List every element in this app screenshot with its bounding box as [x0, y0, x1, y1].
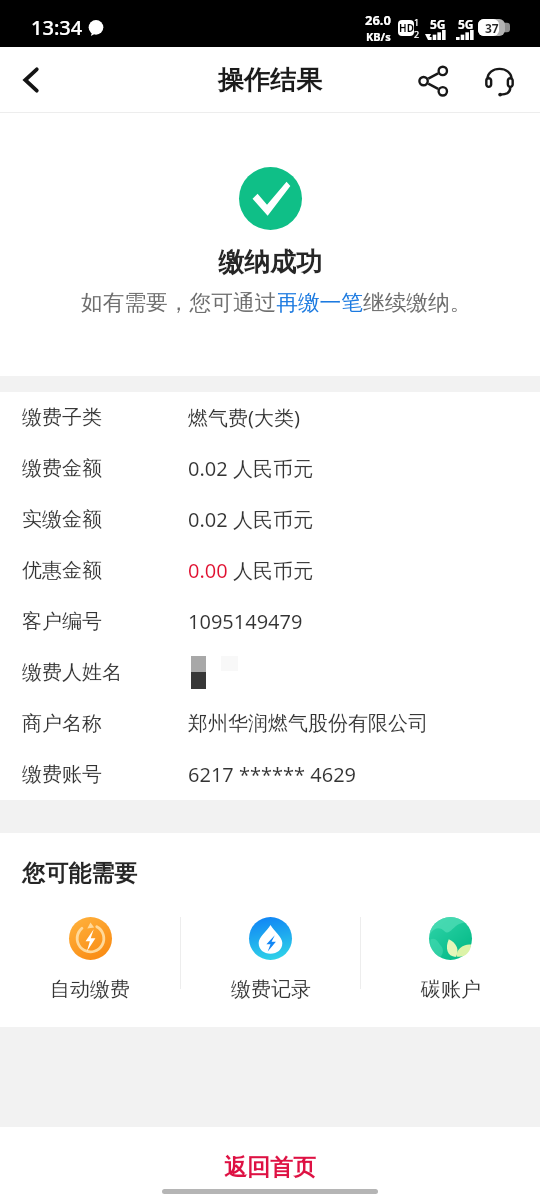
staticText: 碳账户 — [421, 977, 481, 1002]
staticText: 缴费记录 — [231, 977, 311, 1002]
staticText: 实缴金额 — [22, 507, 188, 532]
staticText: 0.02 人民币元 — [188, 506, 313, 533]
staticText: 6217 ****** 4629 — [188, 761, 357, 788]
staticText: 5G — [430, 16, 446, 32]
button[interactable]: Customer service — [466, 47, 532, 113]
staticText: 您可能需要 — [22, 859, 137, 888]
staticText: 37 — [485, 20, 499, 36]
button[interactable]: 缴费记录 — [181, 917, 360, 1020]
staticText: 自动缴费 — [50, 977, 130, 1002]
staticText: 客户编号 — [22, 609, 188, 634]
staticText: 缴费子类 — [22, 405, 188, 430]
staticText: 缴费账号 — [22, 762, 188, 787]
staticText: 缴费人姓名 — [22, 660, 188, 685]
button[interactable]: Share — [400, 47, 466, 113]
staticText: 5G — [458, 16, 474, 32]
staticText: HD — [399, 21, 414, 35]
staticText: 26.0 — [365, 11, 391, 29]
button[interactable]: 返回首页 — [0, 1127, 540, 1189]
staticText: 0.02 人民币元 — [188, 455, 313, 482]
staticText: 操作结果 — [218, 64, 322, 97]
staticText: KB/s — [366, 29, 391, 44]
staticText: 商户名称 — [22, 711, 188, 736]
button[interactable]: 自动缴费 — [0, 917, 180, 1020]
staticText: 2 — [414, 28, 420, 40]
staticText: 1095149479 — [188, 608, 303, 635]
staticText: 0.00 人民币元 — [188, 557, 313, 584]
staticText: 郑州华润燃气股份有限公司 — [188, 711, 428, 736]
staticText: 返回首页 — [224, 1153, 316, 1182]
staticText: 13:34 — [31, 14, 83, 41]
staticText: 缴费金额 — [22, 456, 188, 481]
staticText: 1 — [414, 16, 420, 28]
staticText: 缴纳成功 — [218, 246, 322, 279]
staticText: 燃气费(大类) — [188, 404, 300, 431]
staticText: 优惠金额 — [22, 558, 188, 583]
staticText: 如有需要，您可通过再缴一笔继续缴纳。 — [81, 289, 472, 316]
button[interactable]: 碳账户 — [361, 917, 540, 1020]
button[interactable]: Back — [0, 49, 62, 111]
